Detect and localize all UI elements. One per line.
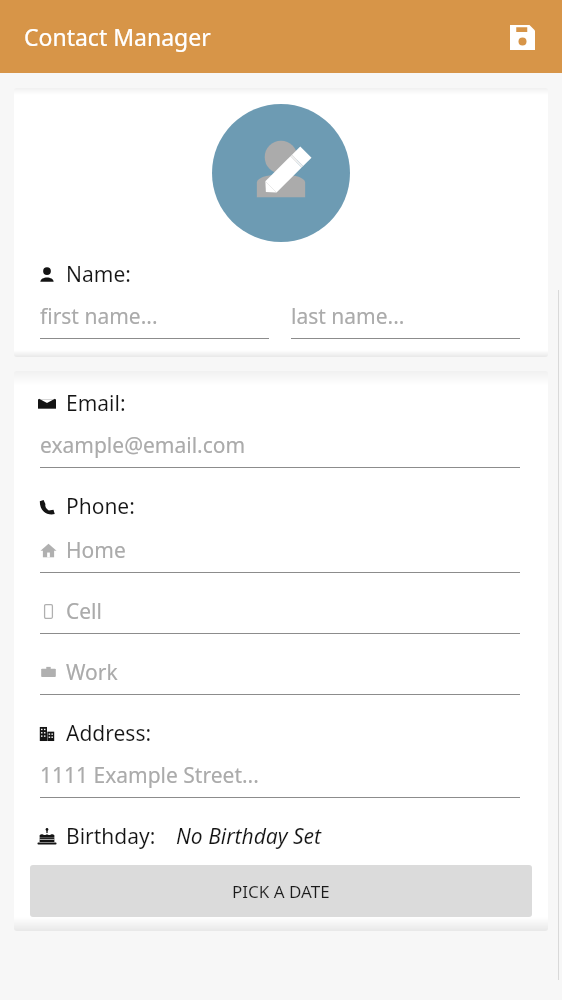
staticText: 1111 Example Street... (40, 761, 259, 790)
button[interactable]: example@email.com (40, 431, 520, 468)
staticText: first name... (40, 302, 158, 331)
button[interactable]: 1111 Example Street... (40, 761, 520, 798)
staticText: last name... (291, 302, 405, 331)
staticText: Work (66, 658, 118, 687)
staticText: Home (66, 536, 126, 565)
button[interactable]: Save contact (500, 15, 544, 59)
staticText: Cell (66, 597, 102, 626)
staticText: Birthday: (66, 822, 156, 851)
staticText: Address: (66, 719, 152, 748)
button[interactable]: PICK A DATE (30, 865, 532, 917)
staticText: No Birthday Set (176, 822, 322, 851)
staticText: Phone: (66, 492, 135, 521)
staticText: example@email.com (40, 431, 246, 460)
staticText: PICK A DATE (232, 880, 330, 903)
button[interactable]: Work (40, 658, 520, 695)
staticText: Email: (66, 389, 126, 418)
button[interactable]: first name... (40, 302, 269, 339)
button[interactable]: Cell (40, 597, 520, 634)
button[interactable]: last name... (291, 302, 520, 339)
button[interactable]: Home (40, 536, 520, 573)
staticText: Contact Manager (24, 21, 211, 52)
staticText: Name: (66, 260, 131, 289)
